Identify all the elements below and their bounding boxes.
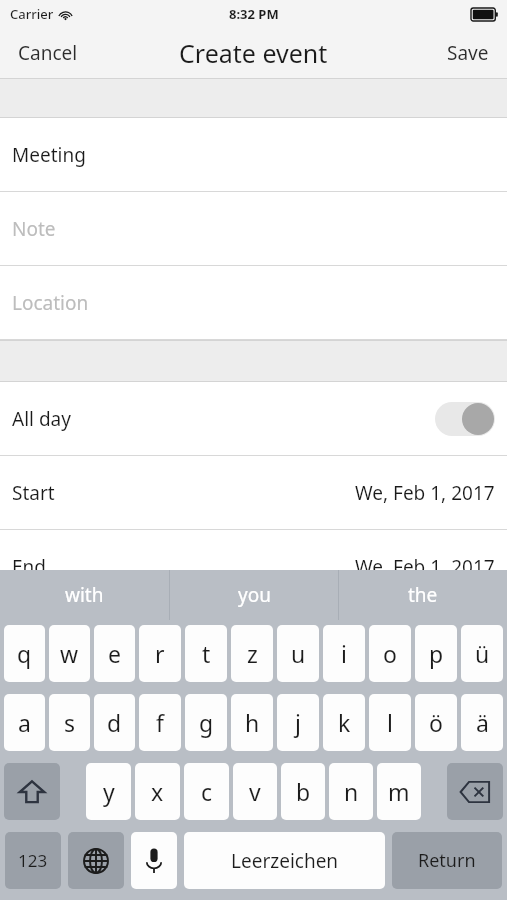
button[interactable]: i xyxy=(323,625,365,682)
button[interactable]: Start xyxy=(0,456,507,530)
button[interactable]: Save xyxy=(429,28,507,78)
button[interactable]: ü xyxy=(461,625,503,682)
staticText: j xyxy=(295,707,301,738)
staticText: ä xyxy=(476,707,489,738)
button[interactable]: u xyxy=(277,625,319,682)
button[interactable]: Cancel xyxy=(0,28,96,78)
staticText: p xyxy=(429,638,444,669)
button[interactable]: you xyxy=(170,570,338,620)
staticText: y xyxy=(103,776,115,807)
staticText: z xyxy=(247,638,258,669)
staticText: n xyxy=(344,776,359,807)
staticText: Save xyxy=(447,40,489,66)
staticText: Carrier xyxy=(10,5,54,23)
button[interactable]: r xyxy=(139,625,181,682)
staticText: We, Feb 1, 2017 xyxy=(355,480,495,506)
staticText: ü xyxy=(475,638,490,669)
staticText: e xyxy=(108,638,121,669)
staticText: Meeting xyxy=(12,142,86,168)
staticText: End xyxy=(12,554,46,580)
button[interactable]: s xyxy=(49,694,90,751)
button[interactable]: n xyxy=(329,763,373,820)
staticText: Create event xyxy=(179,36,328,70)
staticText: d xyxy=(107,707,122,738)
button[interactable]: k xyxy=(323,694,365,751)
button[interactable]: w xyxy=(49,625,90,682)
button[interactable]: Return xyxy=(392,832,502,889)
staticText: h xyxy=(245,707,260,738)
staticText: f xyxy=(156,707,164,738)
staticText: Cancel xyxy=(18,40,78,66)
button[interactable]: l xyxy=(369,694,411,751)
staticText: v xyxy=(249,776,261,807)
staticText: with xyxy=(65,582,104,608)
button[interactable]: h xyxy=(231,694,273,751)
button[interactable]: f xyxy=(139,694,181,751)
other: All day toggle xyxy=(435,402,495,436)
button[interactable]: the xyxy=(339,570,507,620)
button[interactable]: Meeting xyxy=(0,118,507,192)
staticText: 123 xyxy=(18,849,48,872)
staticText: k xyxy=(338,707,351,738)
staticText: m xyxy=(388,776,410,807)
staticText: q xyxy=(17,638,32,669)
staticText: x xyxy=(151,776,164,807)
staticText: ö xyxy=(429,707,443,738)
staticText: a xyxy=(18,707,31,738)
button[interactable]: j xyxy=(277,694,319,751)
staticText: g xyxy=(199,707,214,738)
staticText: Return xyxy=(418,848,476,873)
button[interactable]: p xyxy=(415,625,457,682)
button[interactable]: Leerzeichen xyxy=(184,832,385,889)
staticText: the xyxy=(408,582,438,608)
staticText: Leerzeichen xyxy=(231,848,339,874)
staticText: r xyxy=(155,638,165,669)
button[interactable]: x xyxy=(135,763,180,820)
button[interactable]: Dictation xyxy=(131,832,177,889)
button[interactable]: t xyxy=(185,625,227,682)
staticText: Location xyxy=(12,290,89,316)
button[interactable]: 123 xyxy=(5,832,61,889)
button[interactable]: m xyxy=(377,763,421,820)
button[interactable]: z xyxy=(231,625,273,682)
button[interactable]: d xyxy=(94,694,135,751)
button[interactable]: with xyxy=(0,570,169,620)
staticText: i xyxy=(341,638,347,669)
staticText: Start xyxy=(12,480,55,506)
button[interactable]: o xyxy=(369,625,411,682)
staticText: c xyxy=(201,776,213,807)
button[interactable]: g xyxy=(185,694,227,751)
staticText: Note xyxy=(12,216,56,242)
button[interactable]: ö xyxy=(415,694,457,751)
staticText: l xyxy=(387,707,393,738)
staticText: b xyxy=(296,776,311,807)
button[interactable]: ä xyxy=(461,694,503,751)
button[interactable]: End xyxy=(0,530,507,604)
staticText: o xyxy=(383,638,397,669)
button[interactable]: c xyxy=(184,763,229,820)
button[interactable]: e xyxy=(94,625,135,682)
staticText: w xyxy=(60,638,79,669)
staticText: We, Feb 1, 2017 xyxy=(355,554,495,580)
staticText: u xyxy=(291,638,306,669)
button[interactable]: Backspace xyxy=(447,763,503,820)
button[interactable]: Shift xyxy=(4,763,60,820)
button[interactable]: q xyxy=(4,625,45,682)
staticText: 8:32 PM xyxy=(229,5,279,23)
button[interactable]: a xyxy=(4,694,45,751)
staticText: t xyxy=(202,638,211,669)
button[interactable]: All day xyxy=(0,382,507,456)
staticText: All day xyxy=(12,406,71,432)
button[interactable]: b xyxy=(281,763,325,820)
button[interactable]: Note xyxy=(0,192,507,266)
button[interactable]: Change keyboard language xyxy=(68,832,124,889)
staticText: s xyxy=(64,707,76,738)
button[interactable]: v xyxy=(233,763,277,820)
staticText: you xyxy=(238,582,271,608)
button[interactable]: Location xyxy=(0,266,507,340)
button[interactable]: y xyxy=(86,763,131,820)
